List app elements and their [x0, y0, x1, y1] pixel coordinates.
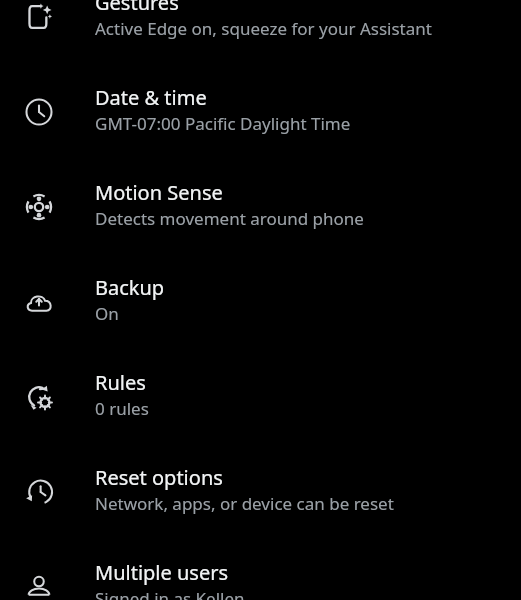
staticText: 0 rules — [95, 397, 149, 420]
staticText: Rules — [95, 369, 146, 396]
staticText: Detects movement around phone — [95, 207, 364, 230]
button[interactable]: Rules — [0, 363, 521, 458]
button[interactable]: Date & time — [0, 78, 521, 173]
staticText: GMT-07:00 Pacific Daylight Time — [95, 112, 351, 135]
button[interactable]: Multiple users — [0, 553, 521, 600]
staticText: On — [95, 302, 119, 325]
staticText: Backup — [95, 274, 165, 301]
staticText: Gestures — [95, 0, 179, 16]
staticText: Reset options — [95, 464, 223, 491]
staticText: Network, apps, or device can be reset — [95, 492, 394, 515]
staticText: Active Edge on, squeeze for your Assista… — [95, 17, 432, 40]
staticText: Multiple users — [95, 559, 229, 586]
button[interactable]: Motion Sense — [0, 173, 521, 268]
button[interactable]: Gestures — [0, 0, 521, 78]
button[interactable]: Reset options — [0, 458, 521, 553]
staticText: Signed in as Kellen — [95, 587, 245, 600]
button[interactable]: Backup — [0, 268, 521, 363]
staticText: Motion Sense — [95, 179, 223, 206]
staticText: Date & time — [95, 84, 207, 111]
